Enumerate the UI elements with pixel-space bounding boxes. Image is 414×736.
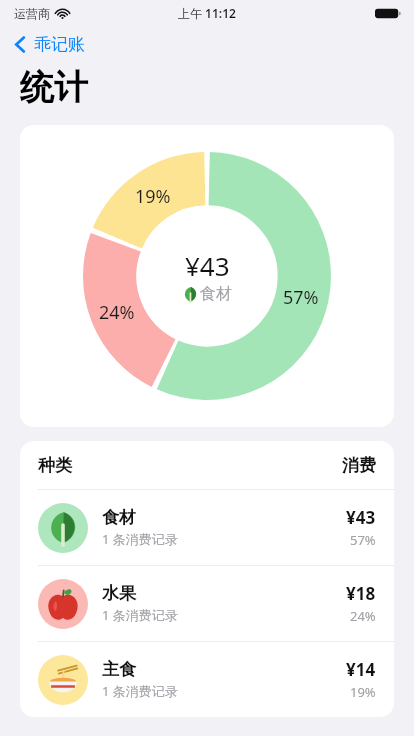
staticText: 19%: [350, 683, 376, 701]
staticText: 24%: [99, 300, 135, 325]
staticText: 食材: [102, 507, 136, 528]
staticText: ¥18: [346, 582, 376, 605]
staticText: 57%: [350, 531, 376, 549]
staticText: 消费: [342, 455, 376, 476]
staticText: 19%: [135, 184, 171, 209]
button[interactable]: 主食: [20, 642, 394, 717]
button[interactable]: Back: [0, 26, 414, 62]
staticText: 上午 11:12: [178, 5, 236, 21]
staticText: 1 条消费记录: [102, 606, 178, 624]
staticText: ¥43: [185, 248, 230, 283]
other: Back: [10, 34, 31, 55]
staticText: 1 条消费记录: [102, 530, 178, 548]
staticText: 乖记账: [34, 34, 85, 55]
staticText: 统计: [20, 66, 88, 109]
staticText: 24%: [350, 607, 376, 625]
staticText: 水果: [102, 583, 136, 604]
staticText: ¥43: [346, 506, 376, 529]
staticText: 1 条消费记录: [102, 682, 178, 700]
staticText: 运营商: [14, 6, 50, 21]
staticText: ¥14: [346, 658, 376, 681]
staticText: 主食: [102, 659, 136, 680]
staticText: 食材: [200, 284, 232, 304]
staticText: 57%: [283, 285, 319, 310]
button[interactable]: 食材: [20, 490, 394, 565]
button[interactable]: 水果: [20, 566, 394, 641]
staticText: 种类: [38, 455, 72, 476]
